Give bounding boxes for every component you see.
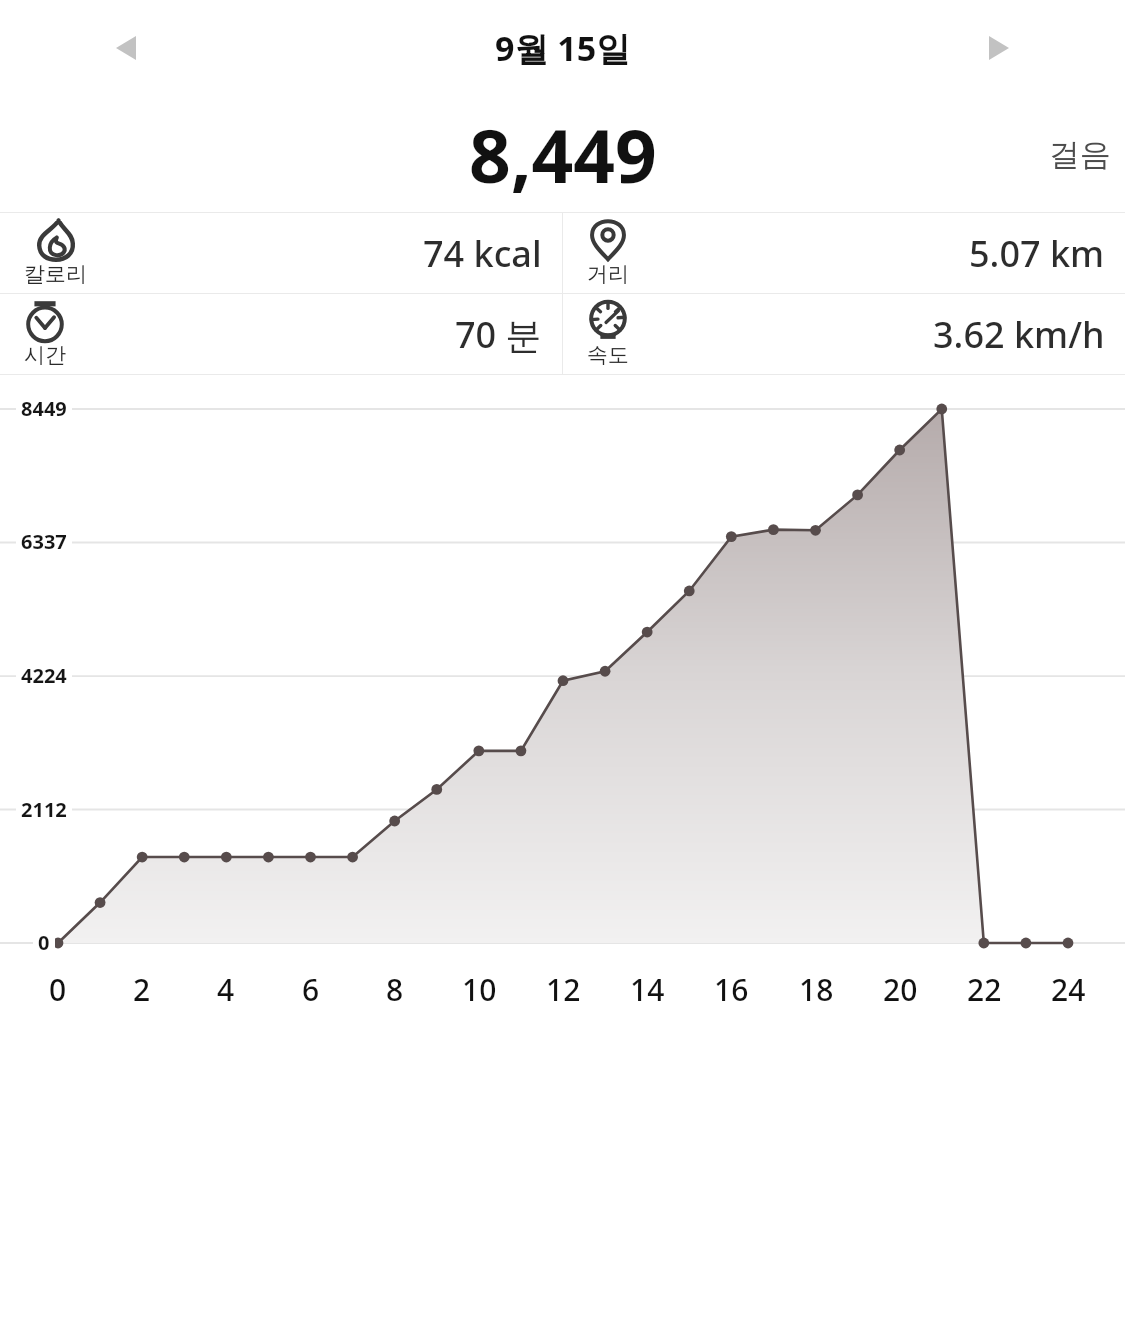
staticText: 칼로리 — [24, 261, 87, 287]
staticText: 74 kcal — [423, 229, 542, 278]
staticText: 18 — [799, 969, 834, 1010]
staticText: 4224 — [21, 662, 67, 689]
staticText: 22 — [967, 969, 1002, 1010]
button[interactable]: Previous day — [100, 22, 152, 74]
staticText: 8 — [386, 969, 404, 1010]
staticText: 걸음 — [1049, 135, 1111, 174]
staticText: 0 — [38, 929, 50, 956]
staticText: 10 — [462, 969, 497, 1010]
staticText: 0 — [49, 969, 67, 1010]
staticText: 16 — [714, 969, 749, 1010]
staticText: 12 — [546, 969, 581, 1010]
staticText: 9월 15일 — [495, 25, 631, 71]
button[interactable]: Next day — [973, 22, 1025, 74]
staticText: 6 — [302, 969, 320, 1010]
staticText: 6337 — [21, 528, 67, 555]
staticText: 24 — [1051, 969, 1086, 1010]
staticText: 3.62 km/h — [933, 310, 1105, 359]
staticText: 거리 — [587, 261, 629, 287]
staticText: 시간 — [24, 342, 66, 368]
staticText: 2 — [133, 969, 151, 1010]
button[interactable]: 거리 — [563, 213, 1125, 293]
button[interactable]: 시간 — [0, 294, 562, 374]
staticText: 4 — [217, 969, 235, 1010]
button[interactable]: 속도 — [563, 294, 1125, 374]
staticText: 8449 — [21, 395, 67, 422]
staticText: 70 분 — [455, 310, 542, 359]
staticText: 20 — [883, 969, 918, 1010]
staticText: 속도 — [587, 342, 629, 368]
staticText: 8,449 — [469, 105, 657, 204]
button[interactable]: 칼로리 — [0, 213, 562, 293]
staticText: 14 — [630, 969, 665, 1010]
staticText: 2112 — [21, 796, 67, 823]
staticText: 5.07 km — [969, 229, 1105, 278]
